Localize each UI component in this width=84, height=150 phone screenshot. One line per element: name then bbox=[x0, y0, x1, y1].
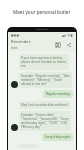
staticText: medicine", "Meeting", "Travel bbox=[21, 78, 63, 82]
staticText: If you have any new schedule, bbox=[21, 56, 64, 60]
button[interactable]: May I ask on what date and time? bbox=[19, 101, 71, 109]
staticText: Example: "Regular meeting", "Take bbox=[21, 74, 70, 78]
staticText: wednesday night", "13:00", "6:30 bbox=[21, 121, 67, 125]
button[interactable]: Layout bbox=[54, 41, 62, 49]
button[interactable]: Example: "Unsure date", bbox=[19, 111, 71, 131]
button[interactable]: Every friday night bbox=[42, 133, 73, 141]
staticText: please do not hesitate to inform bbox=[21, 60, 67, 64]
button[interactable]: Example: "Regular meeting", "Take bbox=[19, 72, 72, 88]
staticText: Every friday night bbox=[45, 135, 70, 139]
button[interactable]: Regular meeting bbox=[43, 90, 73, 98]
staticText: Regular meeting bbox=[46, 92, 70, 96]
staticText: bots bbox=[11, 46, 18, 50]
staticText: me. bbox=[21, 64, 27, 68]
staticText: Example: "Unsure date", bbox=[21, 113, 56, 117]
staticText: abroad at sea site" bbox=[21, 82, 48, 86]
button[interactable]: Bot avatar bbox=[11, 81, 18, 88]
staticText: May I ask on what date and time? bbox=[21, 103, 69, 107]
button[interactable]: Bot avatar bbox=[11, 124, 18, 131]
staticText: Reminder bbox=[11, 39, 31, 45]
staticText: PM every day" bbox=[21, 125, 42, 129]
button[interactable]: Share bbox=[65, 41, 73, 49]
staticText: Meet your personal butler bbox=[13, 9, 71, 15]
button[interactable]: If you have any new schedule, bbox=[19, 54, 69, 70]
staticText: "Tomorrow", "January 6th", "Every bbox=[21, 117, 69, 121]
